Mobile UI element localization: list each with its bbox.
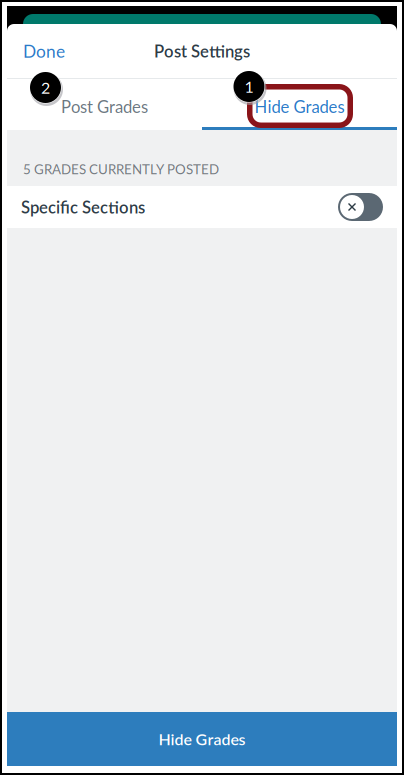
staticText: 1: [244, 77, 253, 96]
staticText: Specific Sections: [21, 197, 145, 217]
staticText: 5 GRADES CURRENTLY POSTED: [23, 161, 219, 177]
staticText: Hide Grades: [158, 729, 245, 749]
staticText: Done: [23, 41, 65, 61]
staticText: Hide Grades: [254, 96, 344, 116]
button[interactable]: Hide Grades: [7, 712, 397, 766]
staticText: Post Grades: [61, 96, 148, 116]
button[interactable]: Hide Grades: [202, 79, 397, 130]
button[interactable]: Done: [7, 24, 97, 78]
button[interactable]: Specific Sections: [7, 186, 397, 228]
staticText: 2: [41, 78, 50, 97]
staticText: Post Settings: [154, 41, 250, 61]
button[interactable]: Post Grades: [7, 79, 202, 130]
